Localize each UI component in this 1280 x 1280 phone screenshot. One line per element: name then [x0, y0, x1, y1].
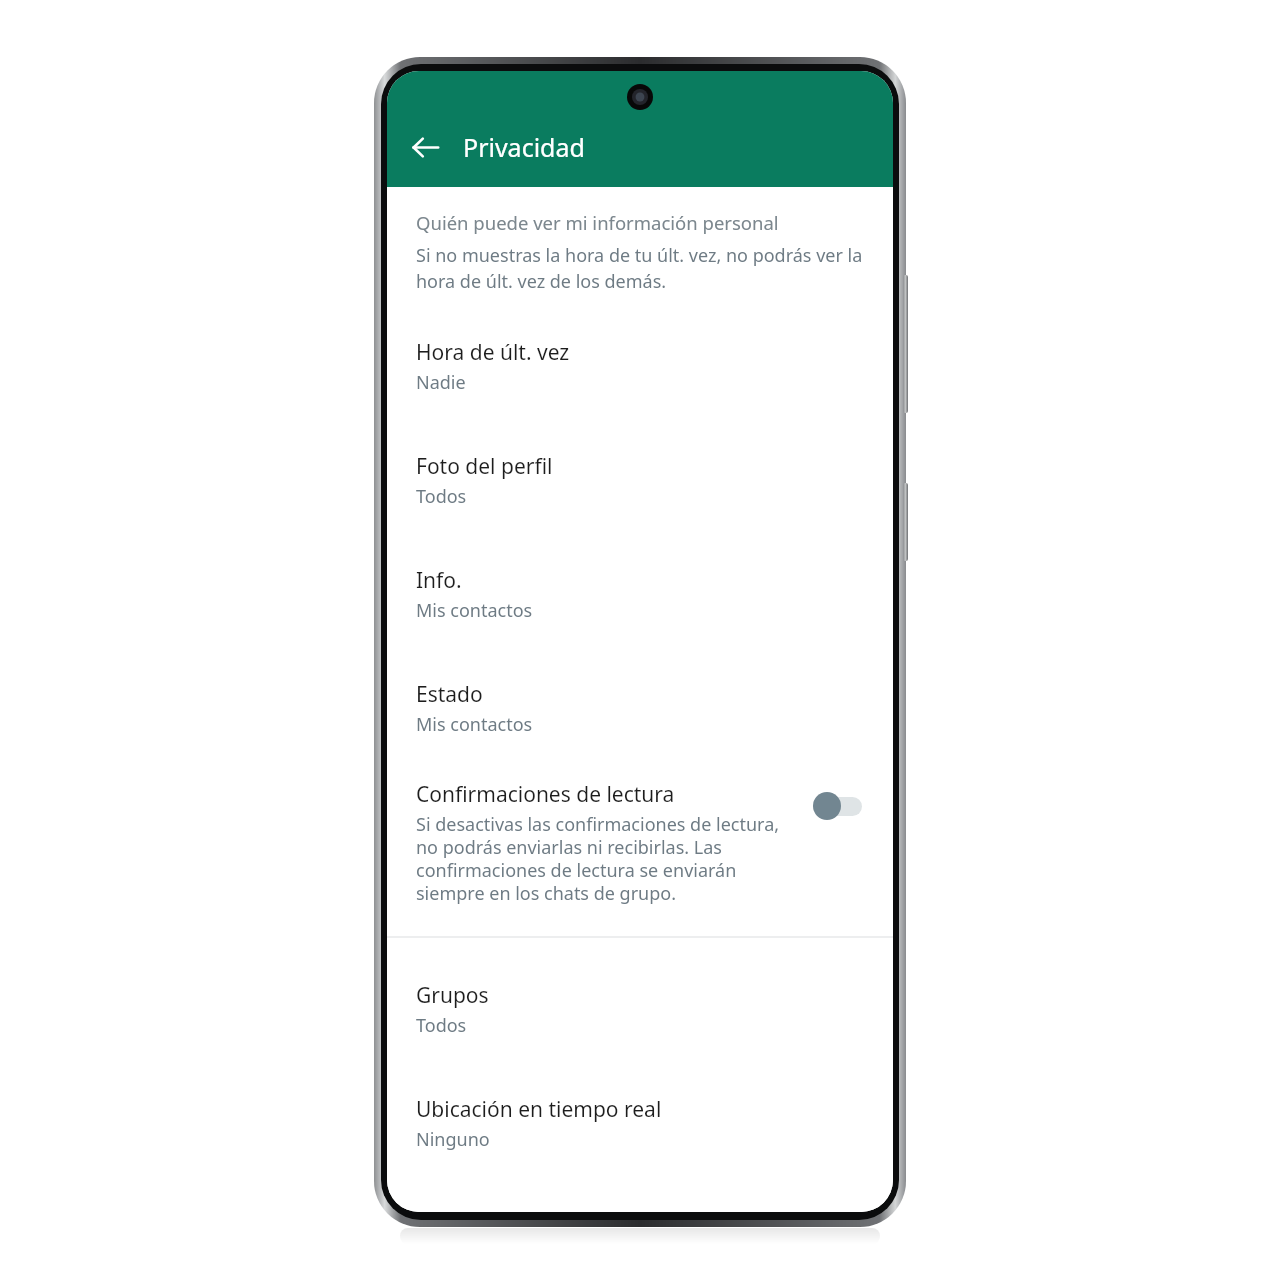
staticText: Ninguno — [416, 1127, 490, 1152]
button[interactable]: Back — [399, 121, 451, 173]
staticText: Todos — [416, 1013, 467, 1038]
button[interactable]: Contactos bloqueados — [387, 1192, 893, 1212]
staticText: Mis contactos — [416, 598, 533, 623]
button[interactable]: Grupos — [387, 964, 893, 1053]
staticText: Todos — [416, 484, 467, 509]
button[interactable]: Hora de últ. vez — [387, 321, 893, 410]
staticText: Foto del perfil — [416, 452, 553, 481]
button[interactable]: Estado — [387, 663, 893, 752]
staticText: Hora de últ. vez — [416, 338, 570, 367]
button[interactable]: Foto del perfil — [387, 435, 893, 524]
staticText: Privacidad — [463, 130, 585, 164]
staticText: Confirmaciones de lectura — [416, 780, 675, 809]
staticText: Si desactivas las confirmaciones de lect… — [416, 812, 787, 905]
staticText: Grupos — [416, 981, 489, 1010]
button[interactable]: Info. — [387, 549, 893, 638]
button[interactable]: Confirmaciones de lectura — [387, 778, 893, 915]
staticText: Si no muestras la hora de tu últ. vez, n… — [416, 243, 868, 293]
button[interactable]: Ubicación en tiempo real — [387, 1078, 893, 1167]
staticText: Ubicación en tiempo real — [416, 1095, 662, 1124]
staticText: Nadie — [416, 370, 466, 395]
button[interactable]: Read receipts toggle — [813, 786, 869, 826]
staticText: Mis contactos — [416, 712, 533, 737]
staticText: Quién puede ver mi información personal — [416, 210, 779, 235]
staticText: Estado — [416, 680, 483, 709]
staticText: Info. — [416, 566, 462, 595]
